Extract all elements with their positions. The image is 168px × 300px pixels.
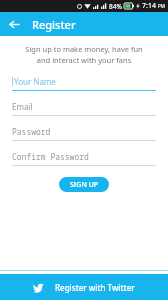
button[interactable]: Email [12, 100, 156, 116]
staticText: Password [12, 126, 51, 137]
staticText: PM [158, 3, 165, 9]
staticText: 84% [109, 2, 122, 11]
staticText: Your Name [14, 76, 56, 87]
button[interactable]: Confirm Password [12, 150, 156, 166]
staticText: Confirm Password [12, 151, 89, 162]
button[interactable]: Back [6, 16, 23, 33]
button[interactable]: SIGN UP [59, 177, 109, 192]
button[interactable]: Your Name [12, 75, 156, 91]
staticText: Register [32, 17, 76, 32]
button[interactable]: Register with Twitter [0, 274, 168, 300]
staticText: Register with Twitter [55, 282, 135, 293]
staticText: 7:14 [142, 1, 156, 11]
staticText: SIGN UP [70, 180, 99, 190]
staticText: Sign up to make money, have fun and inte… [25, 44, 143, 65]
staticText: Email [12, 101, 33, 112]
button[interactable]: Password [12, 125, 156, 141]
